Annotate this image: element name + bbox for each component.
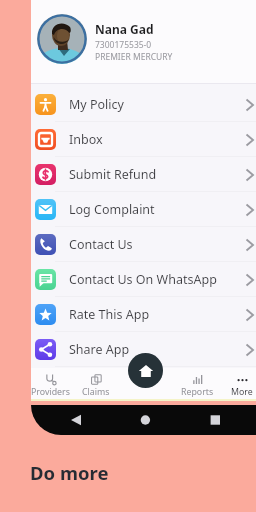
button[interactable]: Contact Us	[31, 227, 256, 262]
staticText: Submit Refund	[69, 166, 157, 183]
staticText: Reports	[181, 386, 214, 398]
staticText: Do more	[30, 460, 109, 485]
staticText: Nana Gad	[95, 21, 154, 37]
button[interactable]: Rate This App	[31, 297, 256, 332]
button[interactable]: Providers	[31, 373, 72, 398]
staticText: Contact Us	[69, 236, 133, 253]
staticText: Contact Us On WhatsApp	[69, 271, 217, 288]
button[interactable]: More	[220, 373, 256, 398]
button[interactable]: Claims	[74, 373, 118, 398]
button[interactable]: Contact Us On WhatsApp	[31, 262, 256, 297]
button[interactable]: Share App	[31, 332, 256, 367]
staticText: Rate This App	[69, 306, 150, 323]
button[interactable]: Inbox	[31, 122, 256, 157]
staticText: My Policy	[69, 96, 124, 113]
staticText: More	[231, 386, 253, 398]
button[interactable]: My Policy	[31, 87, 256, 122]
staticText: Share App	[69, 341, 130, 358]
staticText: Claims	[82, 386, 110, 398]
button[interactable]: Submit Refund	[31, 157, 256, 192]
button[interactable]: Log Complaint	[31, 192, 256, 227]
staticText: Providers	[31, 386, 70, 398]
staticText: Log Complaint	[69, 201, 155, 218]
staticText: PREMIER MERCURY	[95, 51, 173, 63]
button[interactable]: Reports	[175, 373, 219, 398]
staticText: 7300175535-0	[95, 39, 152, 51]
button[interactable]: Home	[128, 353, 163, 388]
staticText: Inbox	[69, 131, 103, 148]
